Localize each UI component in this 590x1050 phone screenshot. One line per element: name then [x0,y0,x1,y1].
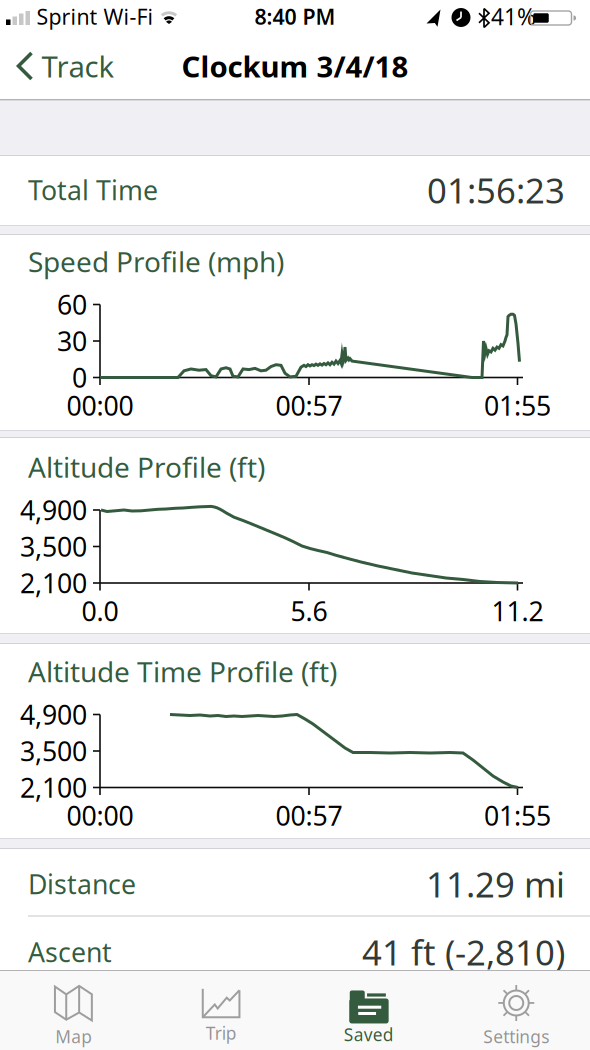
staticText: Altitude Time Profile (ft) [28,653,337,690]
staticText: Total Time [28,172,158,208]
staticText: Distance [28,866,136,902]
staticText: 11.29 mi [426,861,565,907]
staticText: 01:56:23 [427,167,565,213]
button[interactable]: Settings [446,978,586,1050]
staticText: 01:55 [484,388,551,423]
staticText: 60 [57,287,87,322]
staticText: Map [55,1025,92,1048]
staticText: Ascent [28,934,112,970]
staticText: 3,500 [20,529,87,564]
staticText: 30 [57,323,87,359]
staticText: Sprint Wi-Fi [36,2,153,31]
staticText: 00:57 [275,388,342,423]
staticText: 41% [491,1,536,31]
staticText: Altitude Profile (ft) [28,448,265,486]
staticText: 0 [72,360,87,395]
staticText: Saved [344,1023,394,1046]
staticText: Settings [483,1025,549,1048]
staticText: Clockum 3/4/18 [181,46,408,85]
staticText: 4,900 [20,697,87,732]
button[interactable]: Back [10,44,120,88]
staticText: 5.6 [290,593,327,629]
staticText: 4,900 [20,492,87,528]
staticText: 2,100 [20,565,87,601]
staticText: 2,100 [20,770,87,805]
staticText: 01:55 [484,798,551,833]
staticText: Track [41,46,114,85]
staticText: 11.2 [491,593,543,629]
staticText: 3,500 [20,733,87,769]
staticText: Trip [206,1021,237,1044]
staticText: 8:40 PM [254,2,335,31]
button[interactable]: Trip [151,978,291,1050]
staticText: 00:00 [66,388,133,423]
staticText: 41 ft (-2,810) [362,929,565,975]
staticText: 00:57 [275,798,342,833]
staticText: 00:00 [66,798,133,833]
staticText: 0.0 [81,593,118,629]
button[interactable]: Saved [299,978,439,1050]
staticText: Speed Profile (mph) [28,243,284,280]
button[interactable]: Map [4,978,144,1050]
